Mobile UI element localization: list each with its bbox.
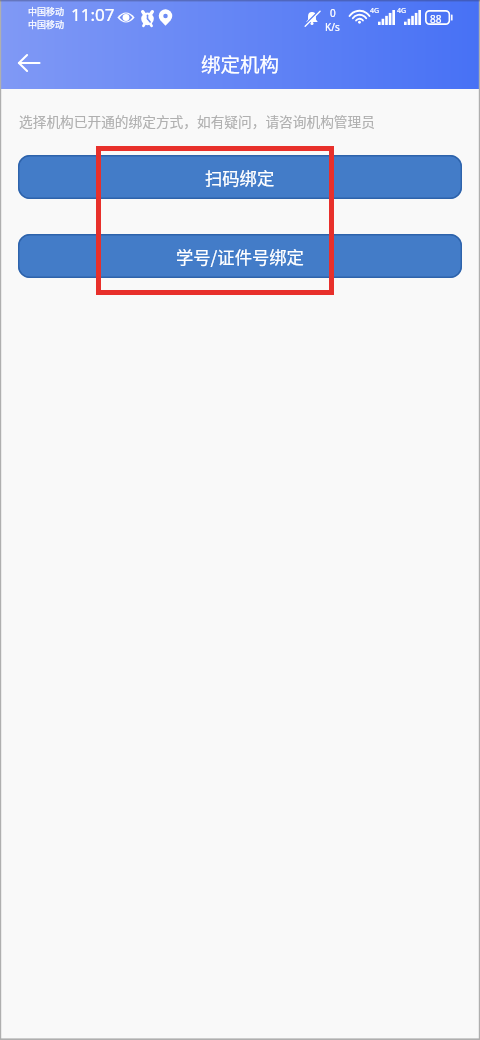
staticText: K/s [325, 20, 340, 34]
button[interactable]: 学号/证件号绑定 [18, 234, 462, 278]
staticText: 中国移动 [28, 18, 65, 31]
staticText: 中国移动 [28, 5, 65, 18]
button[interactable]: 扫码绑定 [18, 155, 462, 199]
staticText: 4G [397, 6, 407, 16]
staticText: 绑定机构 [201, 49, 280, 77]
staticText: 0 [330, 6, 336, 20]
button[interactable]: Back [10, 44, 48, 82]
staticText: 4G [370, 6, 380, 16]
staticText: 选择机构已开通的绑定方式，如有疑问，请咨询机构管理员 [19, 111, 375, 131]
staticText: 学号/证件号绑定 [176, 244, 304, 269]
staticText: 88 [430, 12, 442, 26]
staticText: 11:07 [71, 3, 115, 26]
staticText: 扫码绑定 [205, 165, 275, 190]
